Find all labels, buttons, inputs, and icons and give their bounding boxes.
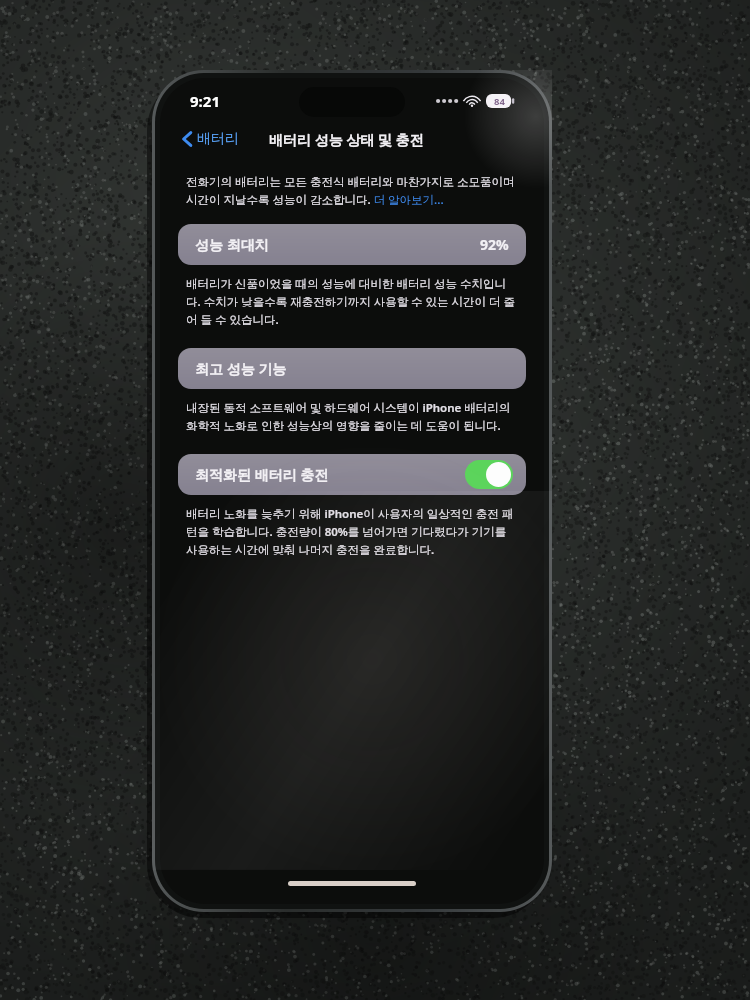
staticText: 92% [480, 235, 509, 254]
button[interactable]: 최고 성능 기능 [178, 348, 526, 389]
button[interactable]: 배터리 [176, 127, 245, 151]
staticText: 84 [494, 95, 505, 108]
staticText: 내장된 동적 소프트웨어 및 하드웨어 시스템이 iPhone 배터리의 화학적… [186, 400, 518, 434]
staticText: 최적화된 배터리 충전 [195, 465, 329, 484]
staticText: 9:21 [190, 91, 220, 111]
staticText: 최고 성능 기능 [195, 359, 287, 378]
staticText: 성능 최대치 [195, 235, 269, 254]
staticText: 배터리 노화를 늦추기 위해 iPhone이 사용자의 일상적인 충전 패턴을 … [186, 506, 518, 558]
button[interactable]: 성능 최대치 [178, 224, 526, 265]
staticText: 배터리 성능 상태 및 충전 [269, 130, 424, 149]
staticText: 배터리 [197, 130, 239, 148]
staticText: 전화기의 배터리는 모든 충전식 배터리와 마찬가지로 소모품이며 시간이 지날… [186, 174, 518, 208]
button[interactable]: 최적화된 배터리 충전 켜짐 [465, 460, 513, 489]
button[interactable]: 최적화된 배터리 충전 [178, 454, 526, 495]
staticText: 배터리가 신품이었을 때의 성능에 대비한 배터리 성능 수치입니다. 수치가 … [186, 276, 518, 328]
